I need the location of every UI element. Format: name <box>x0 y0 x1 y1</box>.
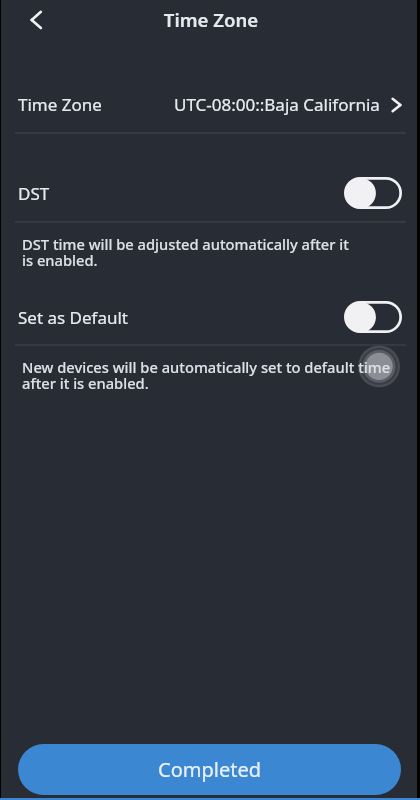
button[interactable]: Back <box>20 3 56 36</box>
staticText: Set as Default <box>18 306 128 329</box>
button[interactable]: Completed <box>18 744 401 795</box>
other: Set as Default toggle <box>344 301 402 333</box>
other: DST toggle <box>344 177 402 209</box>
button[interactable]: DST <box>1 165 417 222</box>
staticText: DST time will be adjusted automatically … <box>22 234 399 270</box>
staticText: UTC-08:00::Baja California <box>174 93 380 116</box>
button[interactable]: Set as Default <box>1 289 417 346</box>
staticText: Time Zone <box>18 93 102 116</box>
staticText: New devices will be automatically set to… <box>22 357 399 393</box>
button[interactable]: Time Zone <box>1 76 417 132</box>
staticText: Completed <box>158 756 261 783</box>
staticText: DST <box>18 182 50 205</box>
staticText: Time Zone <box>3 7 419 32</box>
